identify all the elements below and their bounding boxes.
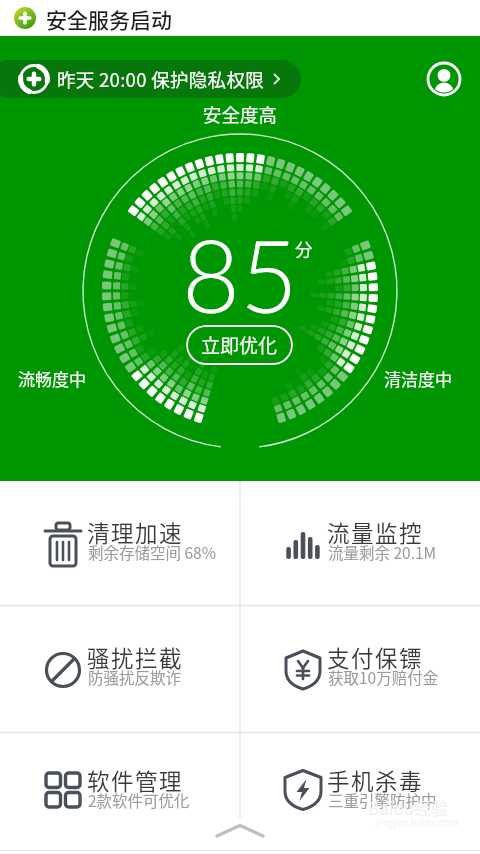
staticText: 立即优化	[201, 331, 278, 359]
staticText: 安全度高	[203, 101, 278, 128]
staticText: 清洁度中	[384, 366, 452, 391]
staticText: Baidu经验	[368, 795, 449, 820]
button[interactable]	[206, 817, 274, 847]
staticText: 剩余存储空间 68%	[88, 541, 216, 563]
staticText: 流畅度中	[18, 366, 86, 391]
staticText: 三重引擎防护中	[328, 789, 437, 811]
staticText: 流量剩余 20.1M	[328, 541, 437, 563]
staticText: 骚扰拦截	[87, 641, 184, 674]
button[interactable]: 手机杀毒	[240, 733, 480, 854]
staticText: 清理加速	[87, 516, 184, 549]
button[interactable]: 清理加速	[0, 481, 240, 605]
staticText: 昨天 20:00 保护隐私权限	[57, 66, 265, 93]
staticText: 2款软件可优化	[88, 789, 190, 811]
staticText: 安全服务启动	[46, 4, 172, 34]
staticText: 分	[295, 236, 313, 261]
button[interactable]: 昨天 20:00 保护隐私权限	[0, 60, 301, 98]
staticText: 获取10万赔付金	[328, 666, 439, 688]
staticText: 手机杀毒	[327, 764, 424, 797]
staticText: 支付保镖	[327, 641, 424, 674]
button[interactable]	[427, 62, 461, 96]
button[interactable]: 支付保镖	[240, 606, 480, 732]
staticText: jingyan.baidu.com	[376, 815, 459, 829]
button[interactable]: 立即优化	[186, 325, 293, 365]
staticText: 85	[182, 214, 298, 334]
staticText: 流量监控	[327, 516, 424, 549]
button[interactable]: 骚扰拦截	[0, 606, 240, 732]
staticText: 防骚扰反欺诈	[88, 666, 182, 688]
button[interactable]: 软件管理	[0, 733, 240, 854]
staticText: 软件管理	[87, 764, 184, 797]
button[interactable]: 流量监控	[240, 481, 480, 605]
